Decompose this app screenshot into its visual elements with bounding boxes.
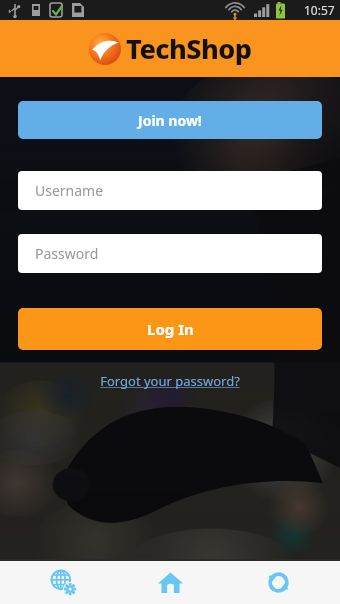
button[interactable]: Password — [18, 234, 322, 273]
staticText: 10:57 — [304, 2, 335, 18]
button[interactable]: Username — [18, 171, 322, 210]
staticText: Username — [35, 181, 104, 200]
staticText: Join now! — [138, 111, 202, 130]
button[interactable]: Join now! — [18, 101, 322, 139]
staticText: Password — [35, 244, 99, 263]
button[interactable]: Log In — [18, 308, 322, 350]
staticText: TechShop — [126, 30, 252, 67]
button[interactable]: Home — [125, 561, 215, 604]
button[interactable]: Forgot your password? — [100, 372, 240, 390]
button[interactable]: Refresh — [233, 561, 323, 604]
button[interactable]: Settings — [18, 561, 108, 604]
staticText: Log In — [147, 319, 194, 339]
